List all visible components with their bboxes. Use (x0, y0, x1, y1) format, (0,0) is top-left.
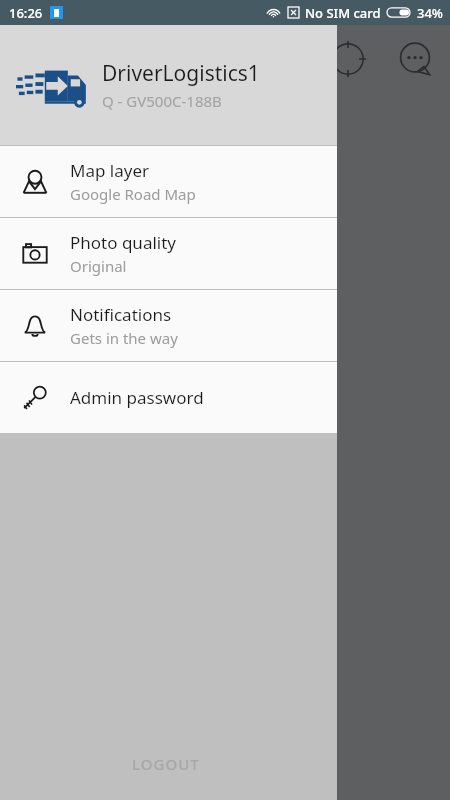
staticText: Admin password (70, 386, 204, 409)
button[interactable]: Photo quality (0, 218, 337, 289)
staticText: Google Road Map (70, 184, 196, 204)
staticText: Gets in the way (70, 328, 178, 348)
staticText: No SIM card (305, 4, 381, 22)
staticText: Map layer (70, 159, 150, 182)
staticText: 34% (417, 4, 443, 22)
button[interactable]: Notifications (0, 290, 337, 361)
button[interactable]: My location (330, 41, 366, 77)
staticText: Photo quality (70, 231, 176, 254)
button[interactable]: Admin password (0, 362, 337, 433)
staticText: Original (70, 256, 127, 276)
button[interactable]: LOGOUT (120, 746, 212, 782)
staticText: Q - GV500C-188B (102, 91, 222, 111)
button[interactable]: Map layer (0, 146, 337, 217)
button[interactable]: Messages (397, 41, 433, 77)
staticText: DriverLogistics1 (102, 59, 260, 88)
staticText: 16:26 (9, 4, 43, 22)
staticText: Notifications (70, 303, 172, 326)
staticText: LOGOUT (132, 754, 200, 774)
button[interactable]: DriverLogistics1 (0, 25, 337, 145)
